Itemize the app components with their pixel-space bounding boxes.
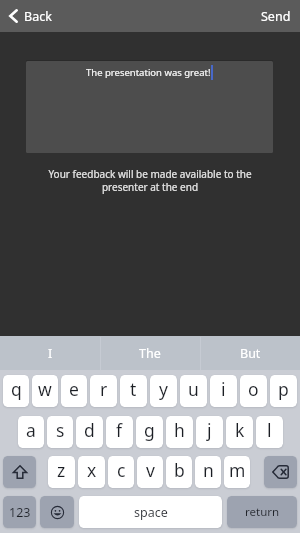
staticText: l (267, 418, 272, 442)
staticText: d (84, 418, 95, 442)
staticText: r (100, 377, 108, 401)
staticText: s (56, 418, 65, 442)
staticText: n (203, 458, 214, 482)
button[interactable]: f (106, 416, 133, 448)
button[interactable]: a (18, 416, 44, 448)
staticText: z (57, 458, 66, 482)
button[interactable]: m (224, 456, 250, 488)
button[interactable]: k (226, 416, 253, 448)
staticText: Send (261, 8, 291, 25)
staticText: c (117, 458, 126, 482)
button[interactable]: r (90, 375, 117, 407)
staticText: j (207, 418, 212, 442)
button[interactable]: g (136, 416, 163, 448)
button[interactable]: w (32, 375, 58, 407)
staticText: m (229, 458, 246, 482)
button[interactable]: Shift (3, 456, 36, 488)
staticText: g (144, 418, 155, 442)
button[interactable]: But (200, 336, 300, 370)
button[interactable]: h (166, 416, 193, 448)
staticText: i (221, 377, 226, 401)
staticText: space (134, 504, 168, 521)
staticText: e (69, 377, 79, 401)
staticText: a (26, 418, 36, 442)
button[interactable]: space (79, 496, 222, 528)
staticText: f (116, 418, 123, 442)
button[interactable]: n (195, 456, 221, 488)
button[interactable]: The presentation was great! (26, 61, 273, 153)
button[interactable]: i (210, 375, 237, 407)
button[interactable]: d (76, 416, 103, 448)
staticText: Your feedback will be made available to … (46, 167, 254, 194)
staticText: q (11, 377, 22, 401)
button[interactable]: l (256, 416, 283, 448)
button[interactable]: b (166, 456, 192, 488)
button[interactable]: v (137, 456, 163, 488)
staticText: k (235, 418, 245, 442)
button[interactable]: o (240, 375, 267, 407)
button[interactable]: x (78, 456, 105, 488)
button[interactable]: Emoji (40, 496, 74, 528)
button[interactable]: 123 (3, 496, 36, 528)
button[interactable]: The (100, 336, 200, 370)
button[interactable]: t (120, 375, 147, 407)
button[interactable]: e (61, 375, 87, 407)
staticText: u (188, 377, 199, 401)
button[interactable]: p (270, 375, 297, 407)
button[interactable]: z (48, 456, 75, 488)
button[interactable]: q (3, 375, 29, 407)
staticText: I (48, 345, 53, 362)
staticText: x (87, 458, 97, 482)
button[interactable]: y (150, 375, 177, 407)
staticText: w (38, 377, 52, 401)
staticText: h (174, 418, 185, 442)
staticText: 123 (9, 504, 31, 521)
staticText: The (139, 345, 161, 362)
staticText: Back (24, 8, 52, 25)
staticText: return (245, 504, 280, 520)
staticText: o (248, 377, 259, 401)
staticText: But (240, 345, 261, 362)
button[interactable]: return (227, 496, 297, 528)
staticText: v (146, 458, 155, 482)
staticText: t (130, 377, 137, 401)
staticText: p (278, 377, 289, 401)
staticText: y (159, 377, 168, 401)
button[interactable]: I (0, 336, 100, 370)
button[interactable]: c (108, 456, 134, 488)
staticText: The presentation was great! (86, 66, 211, 79)
staticText: b (174, 458, 185, 482)
button[interactable]: s (47, 416, 73, 448)
button[interactable]: Back (9, 0, 52, 32)
button[interactable]: u (180, 375, 207, 407)
button[interactable]: Send (261, 0, 291, 32)
button[interactable]: Backspace (264, 456, 297, 488)
button[interactable]: j (196, 416, 223, 448)
